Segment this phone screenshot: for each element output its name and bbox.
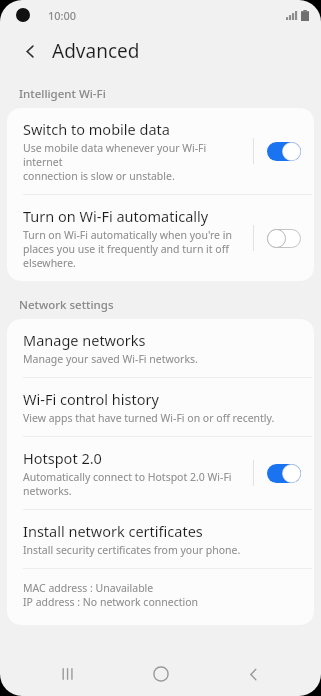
button[interactable]: Home	[137, 652, 185, 696]
staticText: Manage networks	[23, 330, 146, 350]
staticText: Install security certificates from your …	[23, 543, 241, 557]
button[interactable]: Switch to mobile data	[7, 108, 314, 194]
staticText: 10:00	[48, 8, 77, 23]
staticText: Install network certificates	[23, 521, 203, 541]
button[interactable]: On	[264, 460, 304, 486]
staticText: Manage your saved Wi-Fi networks.	[23, 352, 198, 366]
staticText: MAC address : Unavailable	[23, 581, 154, 595]
button[interactable]: Install network certificates	[7, 510, 314, 568]
button[interactable]: Back	[14, 35, 46, 67]
button[interactable]: On	[264, 138, 304, 164]
button[interactable]: Manage networks	[7, 319, 314, 377]
button[interactable]: Recents	[44, 652, 92, 696]
staticText: Turn on Wi-Fi automatically when you're …	[23, 228, 232, 270]
staticText: Intelligent Wi-Fi	[19, 86, 106, 102]
staticText: Wi-Fi control history	[23, 389, 159, 409]
staticText: Turn on Wi-Fi automatically	[23, 206, 209, 226]
button[interactable]: Turn on Wi-Fi automatically	[7, 195, 314, 281]
button[interactable]: Hotspot 2.0	[7, 437, 314, 509]
staticText: Network settings	[19, 297, 114, 313]
staticText: IP address : No network connection	[23, 595, 199, 609]
staticText: Switch to mobile data	[23, 119, 170, 139]
staticText: Automatically connect to Hotspot 2.0 Wi-…	[23, 470, 232, 498]
staticText: Use mobile data whenever your Wi-Fi inte…	[23, 141, 247, 183]
staticText: View apps that have turned Wi-Fi on or o…	[23, 411, 275, 425]
staticText: Advanced	[52, 38, 140, 64]
staticText: Hotspot 2.0	[23, 448, 102, 468]
button[interactable]: Off	[264, 225, 304, 251]
button[interactable]: Wi-Fi control history	[7, 378, 314, 436]
button[interactable]: Back	[229, 652, 277, 696]
